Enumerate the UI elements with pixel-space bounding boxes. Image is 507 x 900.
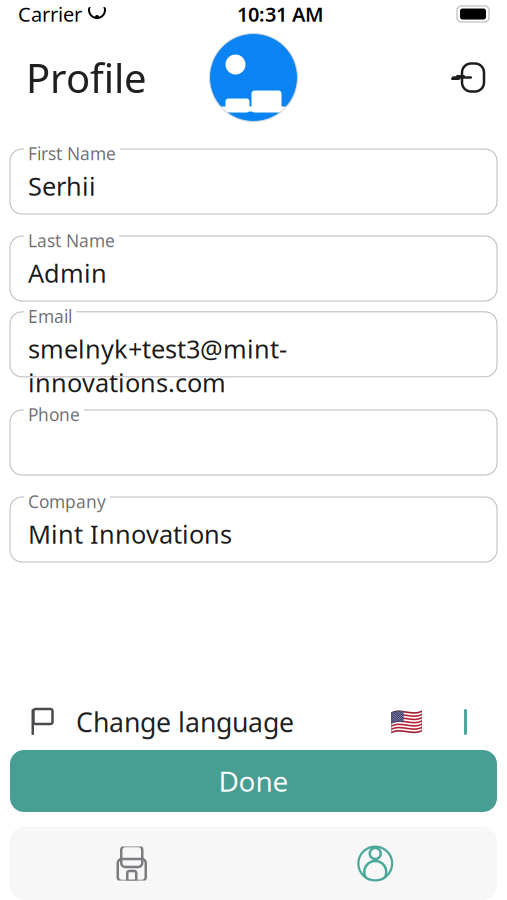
staticText: Company: [28, 490, 106, 513]
staticText: Profile: [26, 51, 147, 104]
button[interactable]: Log out: [447, 52, 507, 102]
button[interactable]: Change profile photo: [209, 33, 297, 121]
button[interactable]: Change language: [0, 694, 507, 750]
staticText: 🇺🇸: [390, 707, 423, 737]
staticText: smelnyk+test3@mint-innovations.com: [28, 332, 287, 399]
staticText: Email: [28, 305, 72, 328]
staticText: First Name: [28, 142, 116, 165]
staticText: 10:31 AM: [237, 1, 324, 27]
staticText: Mint Innovations: [28, 517, 232, 551]
staticText: Last Name: [28, 229, 115, 252]
button[interactable]: Done: [10, 750, 497, 812]
staticText: Carrier: [18, 1, 82, 27]
staticText: Done: [218, 762, 288, 800]
staticText: Serhii: [28, 169, 96, 203]
staticText: Admin: [28, 256, 107, 290]
staticText: Phone: [28, 403, 80, 426]
staticText: Change language: [76, 704, 294, 740]
button[interactable]: Profile: [253, 827, 497, 900]
button[interactable]: Home: [10, 827, 253, 900]
